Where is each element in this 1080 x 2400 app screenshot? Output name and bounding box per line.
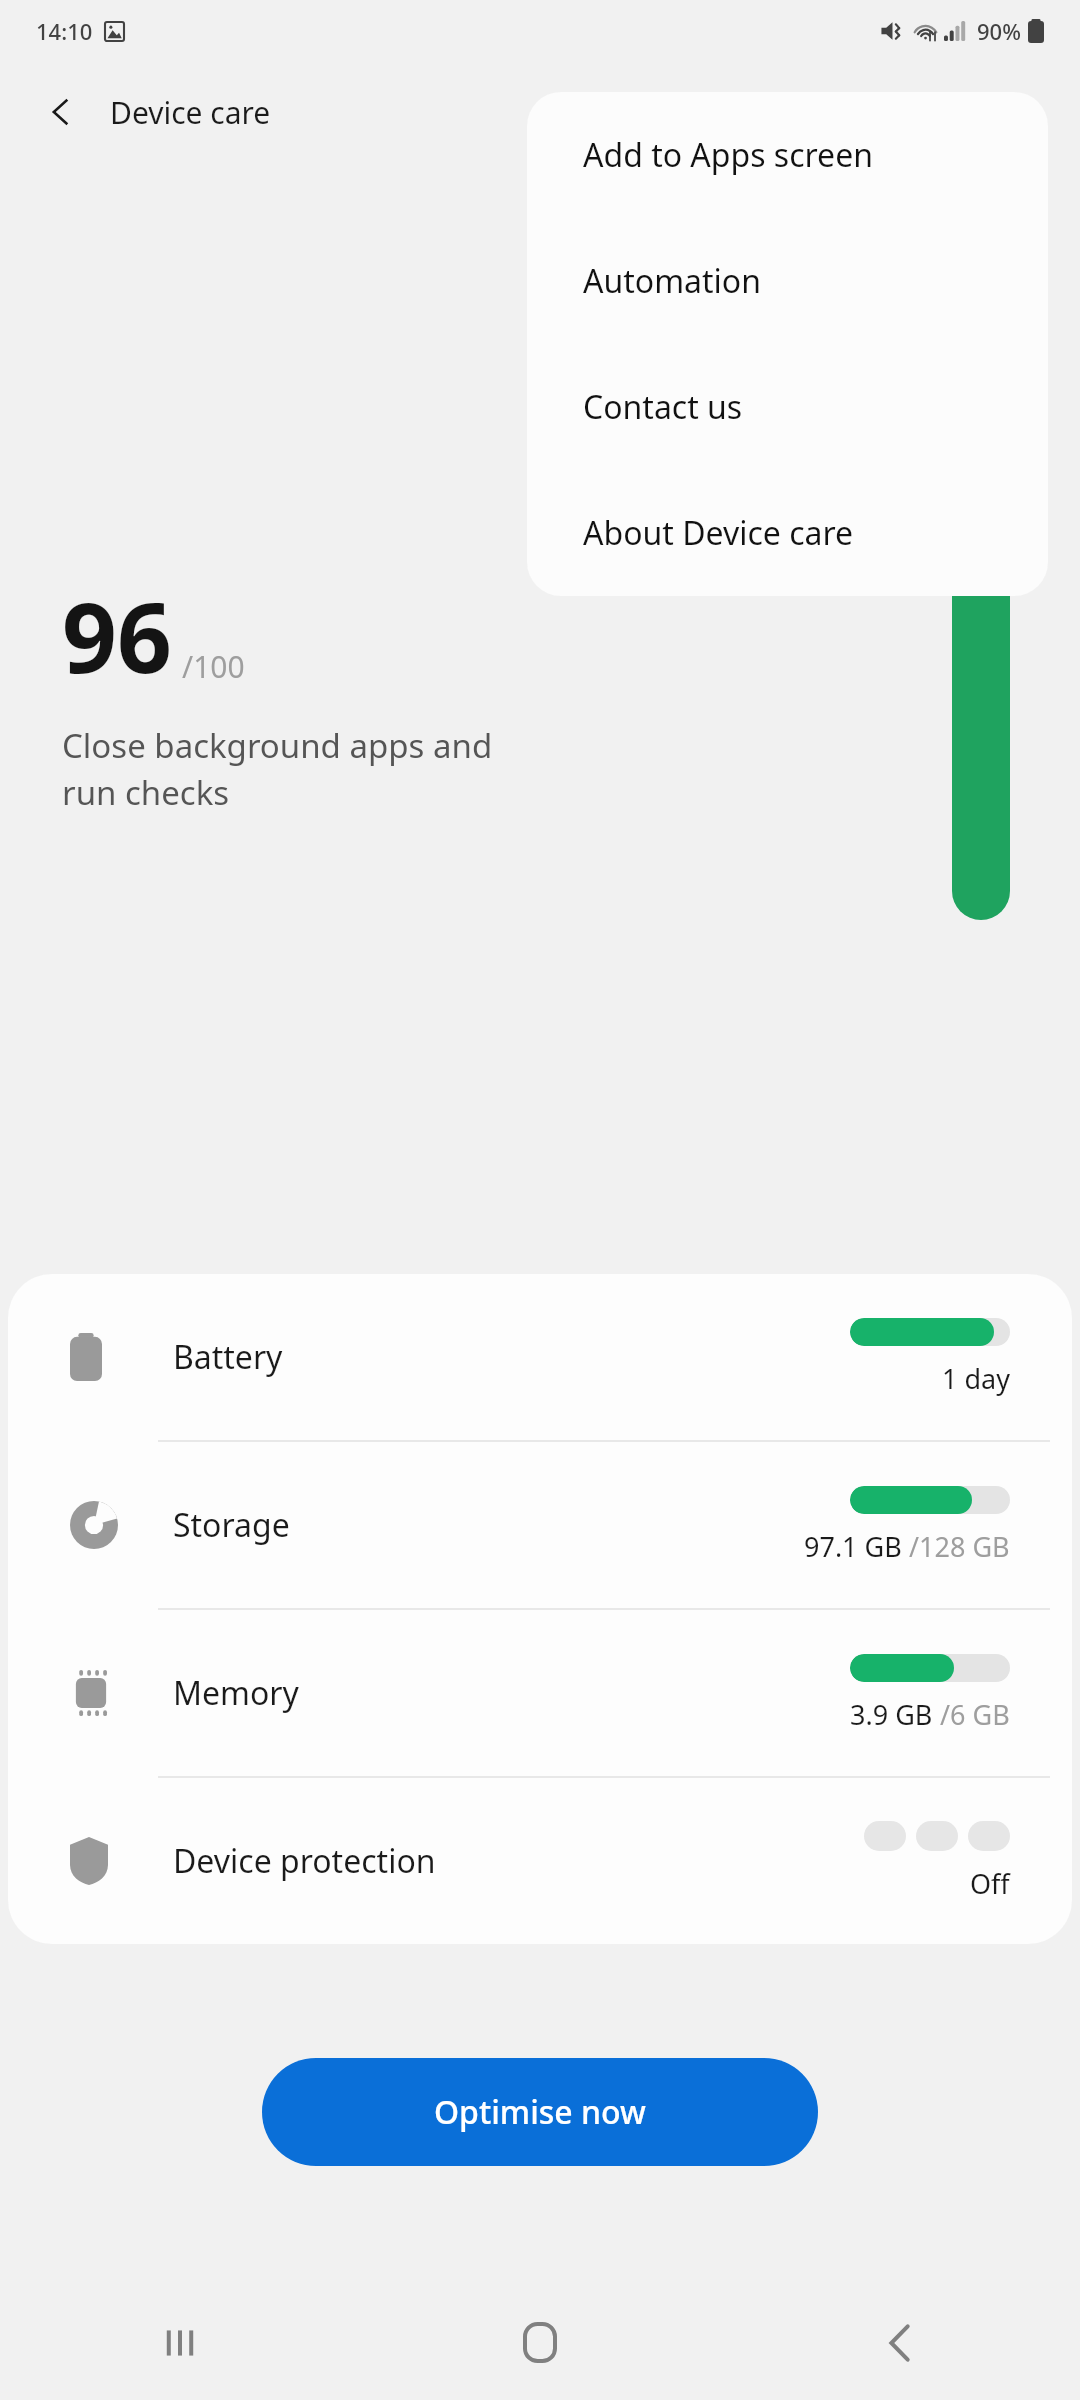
button[interactable]: Automation [527, 218, 1048, 344]
staticText: Contact us [583, 385, 743, 429]
staticText: Close background apps and run checks [62, 723, 493, 815]
staticText: Add to Apps screen [583, 133, 873, 177]
button[interactable]: Back [720, 2285, 1080, 2400]
staticText: 97.1 GB [804, 1528, 909, 1565]
button[interactable]: Back [30, 81, 92, 143]
button[interactable]: Add to Apps screen [527, 92, 1048, 218]
button[interactable]: Memory [8, 1610, 1072, 1776]
staticText: 90% [977, 16, 1021, 46]
button[interactable]: Storage [8, 1442, 1072, 1608]
staticText: Optimise now [434, 2090, 646, 2134]
button[interactable]: Battery [8, 1274, 1072, 1440]
staticText: /128 GB [909, 1528, 1010, 1565]
staticText: /100 [182, 646, 245, 687]
staticText: Device care [110, 92, 271, 133]
staticText: Storage [173, 1503, 290, 1547]
button[interactable]: Home [360, 2285, 720, 2400]
staticText: /6 GB [940, 1696, 1010, 1733]
staticText: 3.9 GB [850, 1696, 940, 1733]
button[interactable]: Device protection [8, 1778, 1072, 1944]
staticText: Device protection [173, 1839, 436, 1883]
staticText: Memory [173, 1671, 299, 1715]
button[interactable]: Contact us [527, 344, 1048, 470]
button[interactable]: About Device care [527, 470, 1048, 596]
button[interactable]: Recents [0, 2285, 360, 2400]
staticText: About Device care [583, 511, 854, 555]
button[interactable]: Optimise now [262, 2058, 818, 2166]
staticText: 1 day [942, 1360, 1010, 1397]
staticText: Battery [173, 1335, 283, 1379]
staticText: 14:10 [36, 16, 93, 46]
staticText: Automation [583, 259, 761, 303]
staticText: Off [970, 1865, 1010, 1902]
staticText: 96 [62, 570, 172, 701]
